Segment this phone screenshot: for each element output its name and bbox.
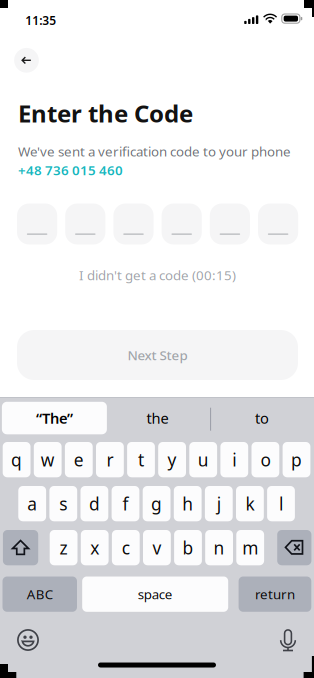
staticText: the	[147, 408, 169, 428]
button[interactable]: Dictation	[279, 629, 297, 652]
staticText: l	[279, 492, 283, 515]
staticText: o	[260, 448, 270, 471]
staticText: a	[27, 492, 37, 515]
button[interactable]: e	[65, 442, 93, 477]
staticText: b	[182, 536, 193, 559]
button[interactable]: x	[81, 530, 109, 565]
staticText: t	[138, 448, 144, 471]
button[interactable]: p	[283, 442, 310, 477]
button[interactable]: the	[106, 402, 210, 434]
staticText: e	[74, 448, 84, 471]
staticText: n	[214, 536, 225, 559]
button[interactable]: q	[3, 442, 30, 477]
button[interactable]: to	[211, 402, 314, 434]
staticText: We've sent a verification code to your p…	[18, 142, 291, 160]
button[interactable]: Emoji	[17, 629, 39, 651]
staticText: m	[242, 536, 258, 559]
button[interactable]: “The”	[2, 402, 107, 434]
staticText: +48 736 015 460	[18, 161, 123, 179]
staticText: s	[59, 492, 67, 515]
button[interactable]: u	[189, 442, 217, 477]
button[interactable]: Back	[14, 48, 39, 73]
button[interactable]: f	[112, 486, 139, 521]
staticText: h	[182, 492, 193, 515]
button[interactable]: Shift	[3, 530, 38, 565]
button[interactable]: ABC	[2, 576, 77, 612]
staticText: v	[152, 536, 161, 559]
button[interactable]: s	[49, 486, 77, 521]
staticText: to	[255, 408, 269, 428]
staticText: Enter the Code	[18, 97, 193, 129]
staticText: j	[217, 492, 221, 515]
button[interactable]: j	[205, 486, 233, 521]
staticText: z	[60, 536, 68, 559]
button[interactable]: y	[158, 442, 186, 477]
staticText: p	[291, 448, 302, 471]
button[interactable]: m	[236, 530, 264, 565]
staticText: q	[11, 448, 22, 471]
staticText: space	[138, 585, 173, 603]
button[interactable]: l	[267, 486, 295, 521]
staticText: return	[255, 585, 295, 603]
button[interactable]: o	[251, 442, 279, 477]
button[interactable]: z	[50, 530, 77, 565]
staticText: ABC	[27, 585, 53, 603]
button[interactable]: b	[174, 530, 202, 565]
button[interactable]: h	[174, 486, 202, 521]
button[interactable]: Delete	[277, 530, 311, 565]
staticText: x	[90, 536, 99, 559]
button[interactable]: w	[34, 442, 62, 477]
button[interactable]: i	[220, 442, 248, 477]
staticText: 11:35	[25, 12, 56, 28]
staticText: u	[198, 448, 209, 471]
staticText: I didn't get a code (00:15)	[79, 266, 236, 284]
staticText: i	[232, 448, 236, 471]
button[interactable]: r	[96, 442, 124, 477]
button[interactable]: v	[143, 530, 171, 565]
button[interactable]: space	[82, 576, 228, 612]
button[interactable]: I didn't get a code (00:15)	[17, 265, 298, 285]
staticText: Next Step	[127, 346, 187, 364]
button[interactable]: n	[205, 530, 233, 565]
button[interactable]: g	[143, 486, 170, 521]
staticText: g	[151, 492, 162, 515]
staticText: w	[41, 448, 55, 471]
staticText: y	[168, 448, 177, 471]
staticText: r	[106, 448, 113, 471]
button[interactable]: t	[127, 442, 155, 477]
button[interactable]: c	[112, 530, 140, 565]
button[interactable]: return	[239, 576, 311, 612]
staticText: k	[245, 492, 254, 515]
button[interactable]: a	[18, 486, 46, 521]
staticText: c	[122, 536, 130, 559]
staticText: “The”	[36, 408, 73, 428]
staticText: d	[89, 492, 100, 515]
button[interactable]: Next Step	[17, 330, 298, 380]
button[interactable]: k	[236, 486, 264, 521]
staticText: f	[122, 492, 128, 515]
button[interactable]: d	[80, 486, 108, 521]
